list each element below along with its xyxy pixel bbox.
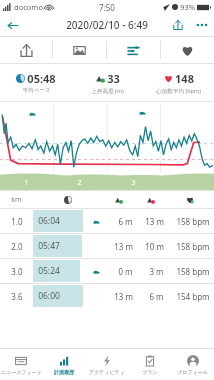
button[interactable]: ニュースフィード bbox=[0, 349, 42, 380]
staticText: アクティビティ bbox=[89, 369, 125, 375]
button[interactable]: 148 bbox=[143, 64, 214, 101]
staticText: 10 m bbox=[145, 241, 164, 252]
button[interactable]: 2.0 bbox=[0, 234, 214, 258]
staticText: 1.0 bbox=[11, 216, 23, 227]
staticText: 計測履歴 bbox=[54, 369, 74, 375]
staticText: 13 m bbox=[145, 216, 164, 227]
staticText: 2 bbox=[77, 178, 82, 188]
staticText: 3.6 bbox=[11, 291, 23, 302]
button[interactable]: 33 bbox=[72, 64, 143, 101]
button[interactable]: Charts bbox=[107, 37, 160, 63]
staticText: 6 m bbox=[118, 216, 133, 227]
staticText: 7:50 bbox=[99, 2, 115, 13]
button[interactable]: プロフィール bbox=[171, 349, 214, 380]
staticText: 158 bpm bbox=[176, 241, 210, 252]
staticText: 06:00 bbox=[38, 290, 60, 302]
staticText: 2020/02/10 - 6:49 bbox=[66, 18, 148, 32]
staticText: 93% bbox=[180, 2, 195, 12]
staticText: 3.0 bbox=[11, 266, 23, 277]
button[interactable]: Favorite bbox=[161, 37, 214, 63]
button[interactable]: More options bbox=[190, 14, 214, 36]
staticText: 3 bbox=[131, 178, 136, 188]
staticText: 05:24 bbox=[38, 265, 60, 277]
staticText: 上昇高度 (m) bbox=[91, 87, 124, 95]
button[interactable]: 05:48 bbox=[0, 64, 72, 101]
staticText: ニュースフィード bbox=[1, 369, 42, 375]
button[interactable]: Back bbox=[0, 14, 24, 36]
staticText: 05:47 bbox=[38, 240, 60, 252]
staticText: プラン bbox=[142, 369, 158, 375]
staticText: プロフィール bbox=[177, 369, 208, 375]
button[interactable]: 3.0 bbox=[0, 259, 214, 283]
button[interactable]: Photos bbox=[53, 37, 106, 63]
staticText: docomo bbox=[14, 2, 43, 12]
staticText: 13 m bbox=[114, 291, 133, 302]
staticText: 158 bpm bbox=[176, 216, 210, 227]
staticText: 05:48 bbox=[27, 71, 56, 86]
staticText: 158 bpm bbox=[176, 266, 210, 277]
staticText: 2.0 bbox=[11, 241, 23, 252]
button[interactable]: 3.6 bbox=[0, 284, 214, 308]
button[interactable]: 計測履歴 bbox=[42, 349, 85, 380]
button[interactable]: プラン bbox=[128, 349, 171, 380]
staticText: 33 bbox=[107, 71, 120, 86]
button[interactable]: 1.0 bbox=[0, 209, 214, 233]
staticText: 154 bpm bbox=[176, 291, 210, 302]
button[interactable]: アクティビティ bbox=[85, 349, 128, 380]
button[interactable]: Upload bbox=[0, 37, 52, 63]
staticText: 0 m bbox=[118, 266, 133, 277]
staticText: 3 m bbox=[149, 266, 164, 277]
staticText: 06:04 bbox=[38, 215, 60, 227]
staticText: 1 bbox=[24, 178, 29, 188]
button[interactable]: Share bbox=[166, 14, 190, 36]
staticText: 148 bbox=[175, 71, 194, 86]
staticText: km bbox=[11, 195, 22, 205]
staticText: 心拍数平均 (bpm) bbox=[156, 87, 201, 95]
staticText: 13 m bbox=[114, 241, 133, 252]
staticText: 平均ペース bbox=[22, 87, 51, 94]
staticText: 6 m bbox=[149, 291, 164, 302]
